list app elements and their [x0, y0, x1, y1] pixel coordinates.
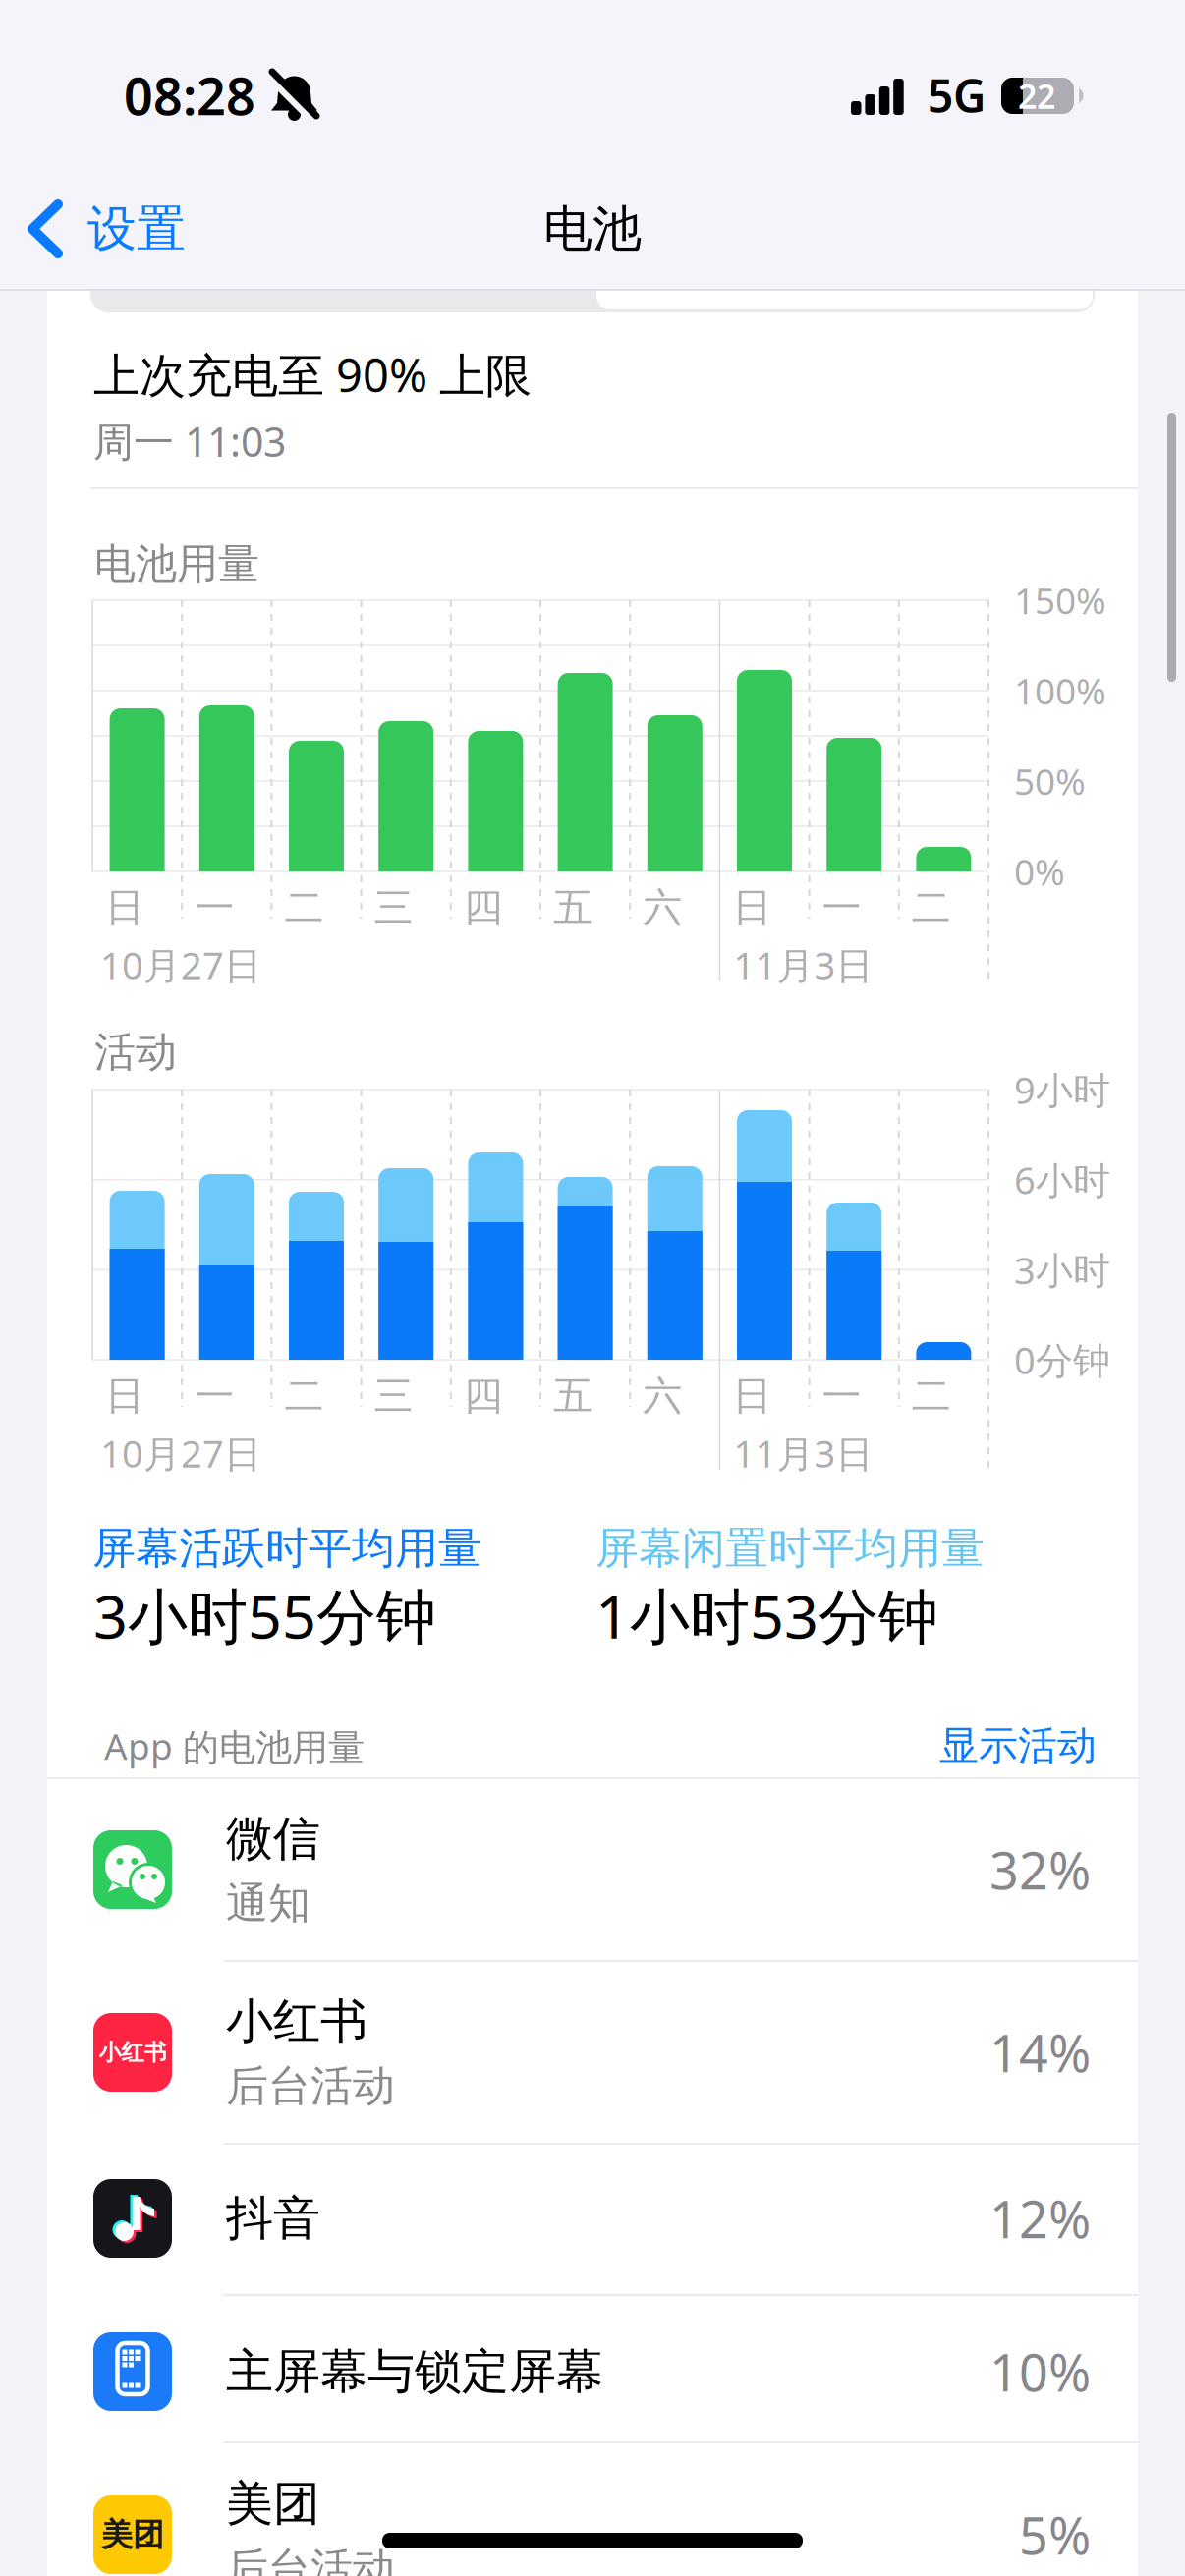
staticText: 上次充电至 90% 上限: [93, 344, 532, 405]
button[interactable]: [90, 255, 1095, 312]
staticText: 三: [374, 1372, 413, 1420]
staticText: 美团: [101, 2515, 164, 2554]
button[interactable]: 设置: [32, 199, 186, 259]
staticText: 五: [553, 1372, 592, 1420]
staticText: 日: [105, 884, 144, 932]
staticText: 5%: [1019, 2501, 1091, 2569]
staticText: 14%: [989, 2018, 1091, 2086]
staticText: 10%: [989, 2338, 1091, 2406]
staticText: 小红书: [99, 2038, 167, 2066]
staticText: 二: [284, 884, 324, 932]
staticText: 一: [195, 1372, 234, 1420]
staticText: 微信: [226, 1810, 320, 1868]
staticText: 一: [195, 884, 234, 932]
staticText: 日: [732, 1372, 772, 1420]
staticText: 0分钟: [1014, 1335, 1110, 1385]
staticText: 日: [105, 1372, 144, 1420]
staticText: 一: [822, 884, 861, 932]
staticText: 活动: [94, 1027, 177, 1078]
staticText: 屏幕闲置时平均用量: [595, 1522, 985, 1575]
staticText: 电池: [543, 199, 642, 259]
staticText: 电池用量: [94, 539, 259, 589]
staticText: 三: [374, 884, 413, 932]
staticText: 11月3日: [733, 940, 873, 990]
staticText: 3小时55分钟: [93, 1575, 436, 1655]
staticText: 小红书: [226, 1993, 367, 2050]
staticText: 6小时: [1014, 1155, 1110, 1204]
staticText: 100%: [1014, 666, 1106, 715]
staticText: 周一 11:03: [93, 414, 286, 468]
staticText: 1小时53分钟: [595, 1575, 938, 1655]
staticText: 四: [464, 1372, 503, 1420]
staticText: 50%: [1014, 757, 1086, 805]
staticText: 四: [464, 884, 503, 932]
button[interactable]: 主屏幕与锁定屏幕: [47, 2297, 1138, 2446]
button[interactable]: 显示活动: [939, 1722, 1097, 1770]
staticText: 08:28: [124, 61, 255, 129]
staticText: 5G: [928, 65, 986, 125]
staticText: 主屏幕与锁定屏幕: [226, 2343, 603, 2401]
button[interactable]: 抖音: [47, 2144, 1138, 2293]
staticText: 9小时: [1014, 1065, 1110, 1114]
staticText: 二: [284, 1372, 324, 1420]
staticText: 美团: [226, 2475, 320, 2533]
staticText: 设置: [87, 199, 186, 259]
staticText: 后台活动: [226, 2060, 395, 2112]
button[interactable]: 小红书: [47, 1961, 1138, 2144]
staticText: 12%: [989, 2184, 1091, 2252]
staticText: App 的电池用量: [104, 1722, 365, 1770]
staticText: 二: [912, 1372, 951, 1420]
staticText: 六: [643, 884, 682, 932]
staticText: 抖音: [226, 2189, 320, 2247]
staticText: 0%: [1014, 847, 1065, 896]
staticText: 10月27日: [100, 1428, 261, 1478]
staticText: 六: [643, 1372, 682, 1420]
staticText: 10月27日: [100, 940, 261, 990]
staticText: 日: [732, 884, 772, 932]
button[interactable]: 微信: [47, 1778, 1138, 1961]
staticText: 五: [553, 884, 592, 932]
button[interactable]: 美团: [47, 2443, 1138, 2576]
staticText: 显示活动: [939, 1722, 1097, 1770]
staticText: 32%: [989, 1836, 1091, 1904]
staticText: 3小时: [1014, 1245, 1110, 1295]
staticText: 通知: [226, 1878, 310, 1929]
staticText: 后台活动: [226, 2543, 395, 2576]
staticText: 22: [1018, 74, 1055, 118]
staticText: 二: [912, 884, 951, 932]
staticText: 150%: [1014, 576, 1106, 624]
staticText: 一: [822, 1372, 861, 1420]
staticText: 11月3日: [733, 1428, 873, 1478]
staticText: 屏幕活跃时平均用量: [92, 1522, 481, 1575]
